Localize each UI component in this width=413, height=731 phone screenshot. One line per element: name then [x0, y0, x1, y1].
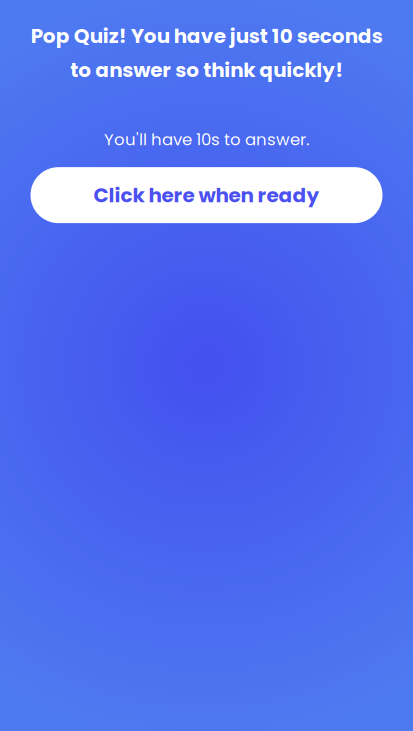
staticText: You'll have 10s to answer. [104, 128, 309, 151]
staticText: Click here when ready [93, 181, 319, 209]
staticText: Pop Quiz! You have just 10 seconds to an… [30, 22, 382, 84]
button[interactable]: Click here when ready [30, 167, 382, 223]
